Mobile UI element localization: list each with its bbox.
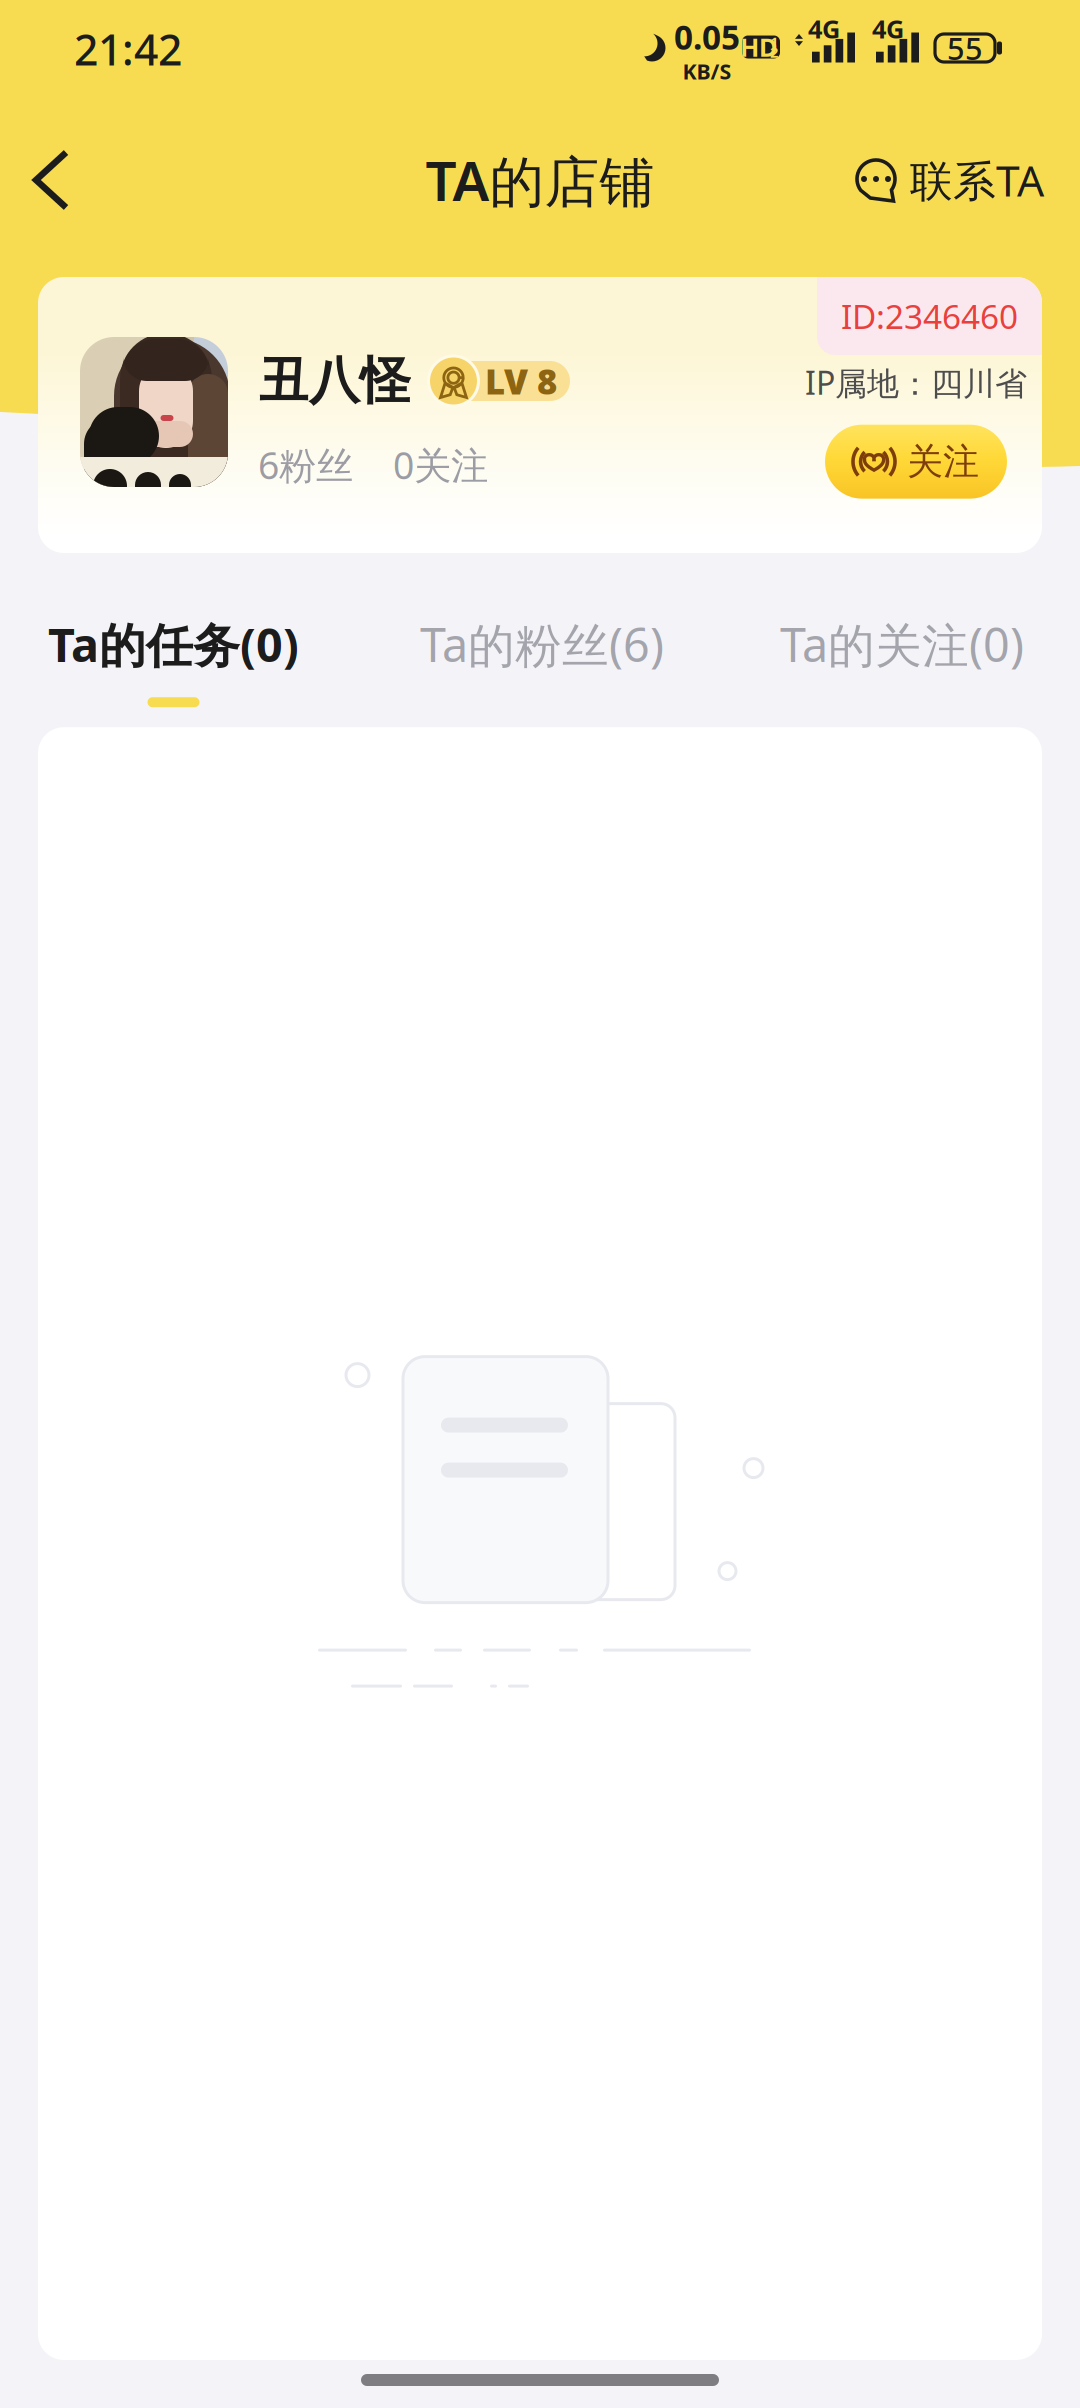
staticText: LV 8 — [485, 358, 557, 404]
staticText: IP属地：四川省 — [805, 361, 1027, 404]
staticText: 关注 — [907, 440, 979, 484]
staticText: 2 — [770, 42, 778, 62]
button[interactable]: Ta的粉丝(6) — [420, 613, 780, 675]
button[interactable]: Back — [0, 119, 106, 222]
staticText: 0.05 — [674, 15, 740, 59]
button[interactable]: 联系TA — [856, 121, 1080, 221]
staticText: 丑八怪 — [258, 350, 411, 412]
staticText: HD — [740, 30, 778, 64]
staticText: 21:42 — [74, 21, 182, 77]
staticText: Ta的关注(0) — [780, 613, 1024, 675]
staticText: 联系TA — [910, 152, 1044, 208]
staticText: 4G — [872, 12, 904, 45]
button[interactable]: 关注 — [825, 425, 1007, 499]
staticText: 6粉丝 0关注 — [258, 440, 488, 490]
staticText: 4G — [808, 12, 840, 45]
staticText: KB/S — [682, 57, 731, 85]
staticText: ID:2346460 — [841, 294, 1018, 338]
staticText: 55 — [947, 28, 983, 68]
button[interactable]: Ta的关注(0) — [780, 613, 1040, 675]
staticText: Ta的任务(0) — [48, 613, 299, 675]
staticText: TA的店铺 — [425, 144, 654, 216]
staticText: 1 — [770, 32, 778, 52]
staticText: Ta的粉丝(6) — [420, 613, 664, 675]
button[interactable]: Ta的任务(0) — [48, 613, 420, 707]
